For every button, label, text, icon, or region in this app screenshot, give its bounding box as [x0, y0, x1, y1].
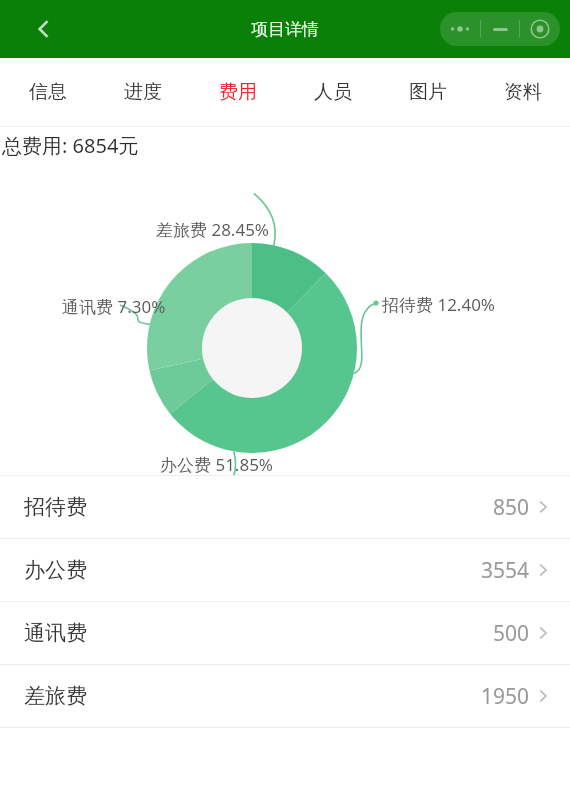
staticText: 1950 [481, 682, 530, 711]
staticText: 进度 [124, 80, 162, 104]
staticText: 500 [493, 619, 530, 648]
staticText: 通讯费 7.30% [62, 295, 166, 318]
staticText: 总费用: 6854元 [2, 132, 139, 159]
staticText: 图片 [409, 80, 447, 104]
staticText: 项目详情 [251, 19, 319, 40]
staticText: 850 [493, 493, 530, 522]
button[interactable]: Minimize [481, 12, 519, 46]
button[interactable]: Close [520, 12, 560, 46]
staticText: 信息 [29, 80, 67, 104]
staticText: 办公费 [24, 557, 87, 583]
staticText: 招待费 [24, 494, 87, 520]
button[interactable]: 费用 [190, 58, 285, 126]
staticText: 差旅费 [24, 683, 87, 709]
button[interactable]: 图片 [380, 58, 475, 126]
button[interactable]: 进度 [95, 58, 190, 126]
button[interactable]: 人员 [285, 58, 380, 126]
staticText: 办公费 51.85% [160, 453, 273, 476]
button[interactable]: Back [26, 11, 62, 47]
staticText: 费用 [219, 80, 257, 104]
button[interactable]: 招待费 [0, 476, 570, 538]
button[interactable]: 资料 [475, 58, 570, 126]
button[interactable]: 信息 [0, 58, 95, 126]
staticText: 人员 [314, 80, 352, 104]
button[interactable]: More [440, 12, 480, 46]
button[interactable]: 差旅费 [0, 665, 570, 727]
staticText: 差旅费 28.45% [156, 218, 269, 241]
staticText: 招待费 12.40% [382, 293, 495, 316]
staticText: 通讯费 [24, 620, 87, 646]
staticText: 资料 [504, 80, 542, 104]
staticText: 3554 [481, 556, 530, 585]
button[interactable]: 办公费 [0, 539, 570, 601]
button[interactable]: 通讯费 [0, 602, 570, 664]
